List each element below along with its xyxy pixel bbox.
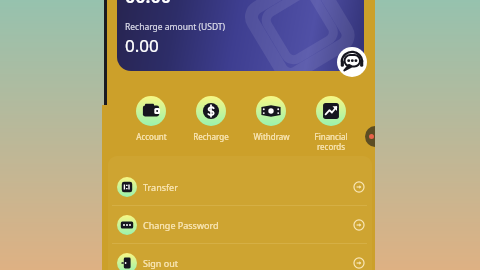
staticText: 0.00: [125, 34, 159, 57]
button[interactable]: Sign out: [105, 244, 375, 270]
staticText: Recharge amount (USDT): [125, 21, 226, 33]
staticText: Sign out: [143, 257, 178, 269]
button[interactable]: Account: [122, 96, 180, 142]
button[interactable]: Financial records: [302, 96, 360, 152]
staticText: 00.00: [125, 0, 172, 9]
button[interactable]: Customer support chat: [337, 47, 367, 77]
staticText: Financial records: [314, 131, 348, 152]
staticText: Recharge: [193, 131, 229, 142]
button[interactable]: Recharge: [182, 96, 240, 142]
staticText: Withdraw: [253, 131, 290, 142]
staticText: Change Password: [143, 219, 219, 231]
button[interactable]: Change Password: [105, 206, 375, 243]
button[interactable]: Withdraw: [242, 96, 300, 142]
staticText: Transfer: [143, 181, 178, 193]
button[interactable]: Notifications: [365, 126, 375, 147]
button[interactable]: Transfer: [105, 168, 375, 205]
staticText: Account: [136, 131, 167, 142]
